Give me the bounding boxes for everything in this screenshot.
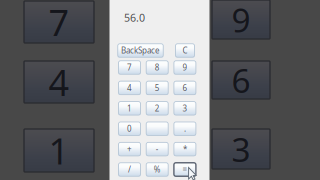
- button[interactable]: =: [174, 163, 196, 176]
- button[interactable]: .: [174, 122, 196, 135]
- button[interactable]: /: [118, 163, 140, 176]
- staticText: BackSpace: [121, 45, 160, 56]
- staticText: 1: [48, 127, 69, 174]
- button[interactable]: 7: [24, 1, 94, 43]
- button[interactable]: BackSpace: [118, 44, 163, 57]
- staticText: 7: [127, 62, 132, 73]
- button[interactable]: 1: [118, 101, 140, 115]
- button[interactable]: 5: [146, 81, 168, 95]
- staticText: 3: [231, 127, 250, 171]
- button[interactable]: 9: [174, 61, 196, 74]
- button[interactable]: 0: [118, 122, 140, 135]
- staticText: 3: [182, 103, 187, 114]
- staticText: 4: [127, 83, 132, 93]
- staticText: C: [182, 45, 187, 56]
- staticText: 8: [155, 62, 160, 73]
- staticText: 7: [48, 0, 69, 46]
- button[interactable]: 6: [174, 81, 196, 95]
- staticText: .: [184, 123, 186, 134]
- button[interactable]: C: [175, 44, 194, 57]
- button[interactable]: 7: [118, 61, 140, 74]
- button[interactable]: *: [174, 142, 196, 156]
- staticText: 0: [127, 123, 132, 134]
- staticText: 6: [182, 83, 187, 93]
- staticText: 2: [155, 103, 160, 114]
- button[interactable]: 1: [24, 129, 94, 172]
- button[interactable]: 4: [118, 81, 140, 95]
- staticText: 5: [155, 83, 160, 93]
- button[interactable]: 8: [146, 61, 168, 74]
- staticText: -: [156, 144, 159, 154]
- staticText: *: [183, 144, 187, 154]
- staticText: 56.0: [124, 10, 145, 25]
- staticText: 4: [48, 58, 69, 106]
- button[interactable]: -: [146, 142, 168, 156]
- button[interactable]: +: [118, 142, 140, 156]
- button[interactable]: 6: [212, 61, 270, 99]
- button[interactable]: 3: [174, 101, 196, 115]
- staticText: 9: [231, 0, 250, 42]
- button[interactable]: %: [146, 163, 168, 176]
- staticText: 6: [231, 58, 250, 102]
- button[interactable]: 4: [24, 61, 94, 103]
- staticText: +: [127, 144, 132, 154]
- button[interactable]: 9: [212, 0, 270, 39]
- staticText: 1: [127, 103, 132, 114]
- button[interactable]: 3: [212, 129, 270, 169]
- button[interactable]: [146, 122, 168, 135]
- staticText: 9: [182, 62, 187, 73]
- button[interactable]: 2: [146, 101, 168, 115]
- staticText: =: [182, 164, 187, 175]
- staticText: /: [128, 164, 131, 175]
- staticText: %: [154, 164, 161, 175]
